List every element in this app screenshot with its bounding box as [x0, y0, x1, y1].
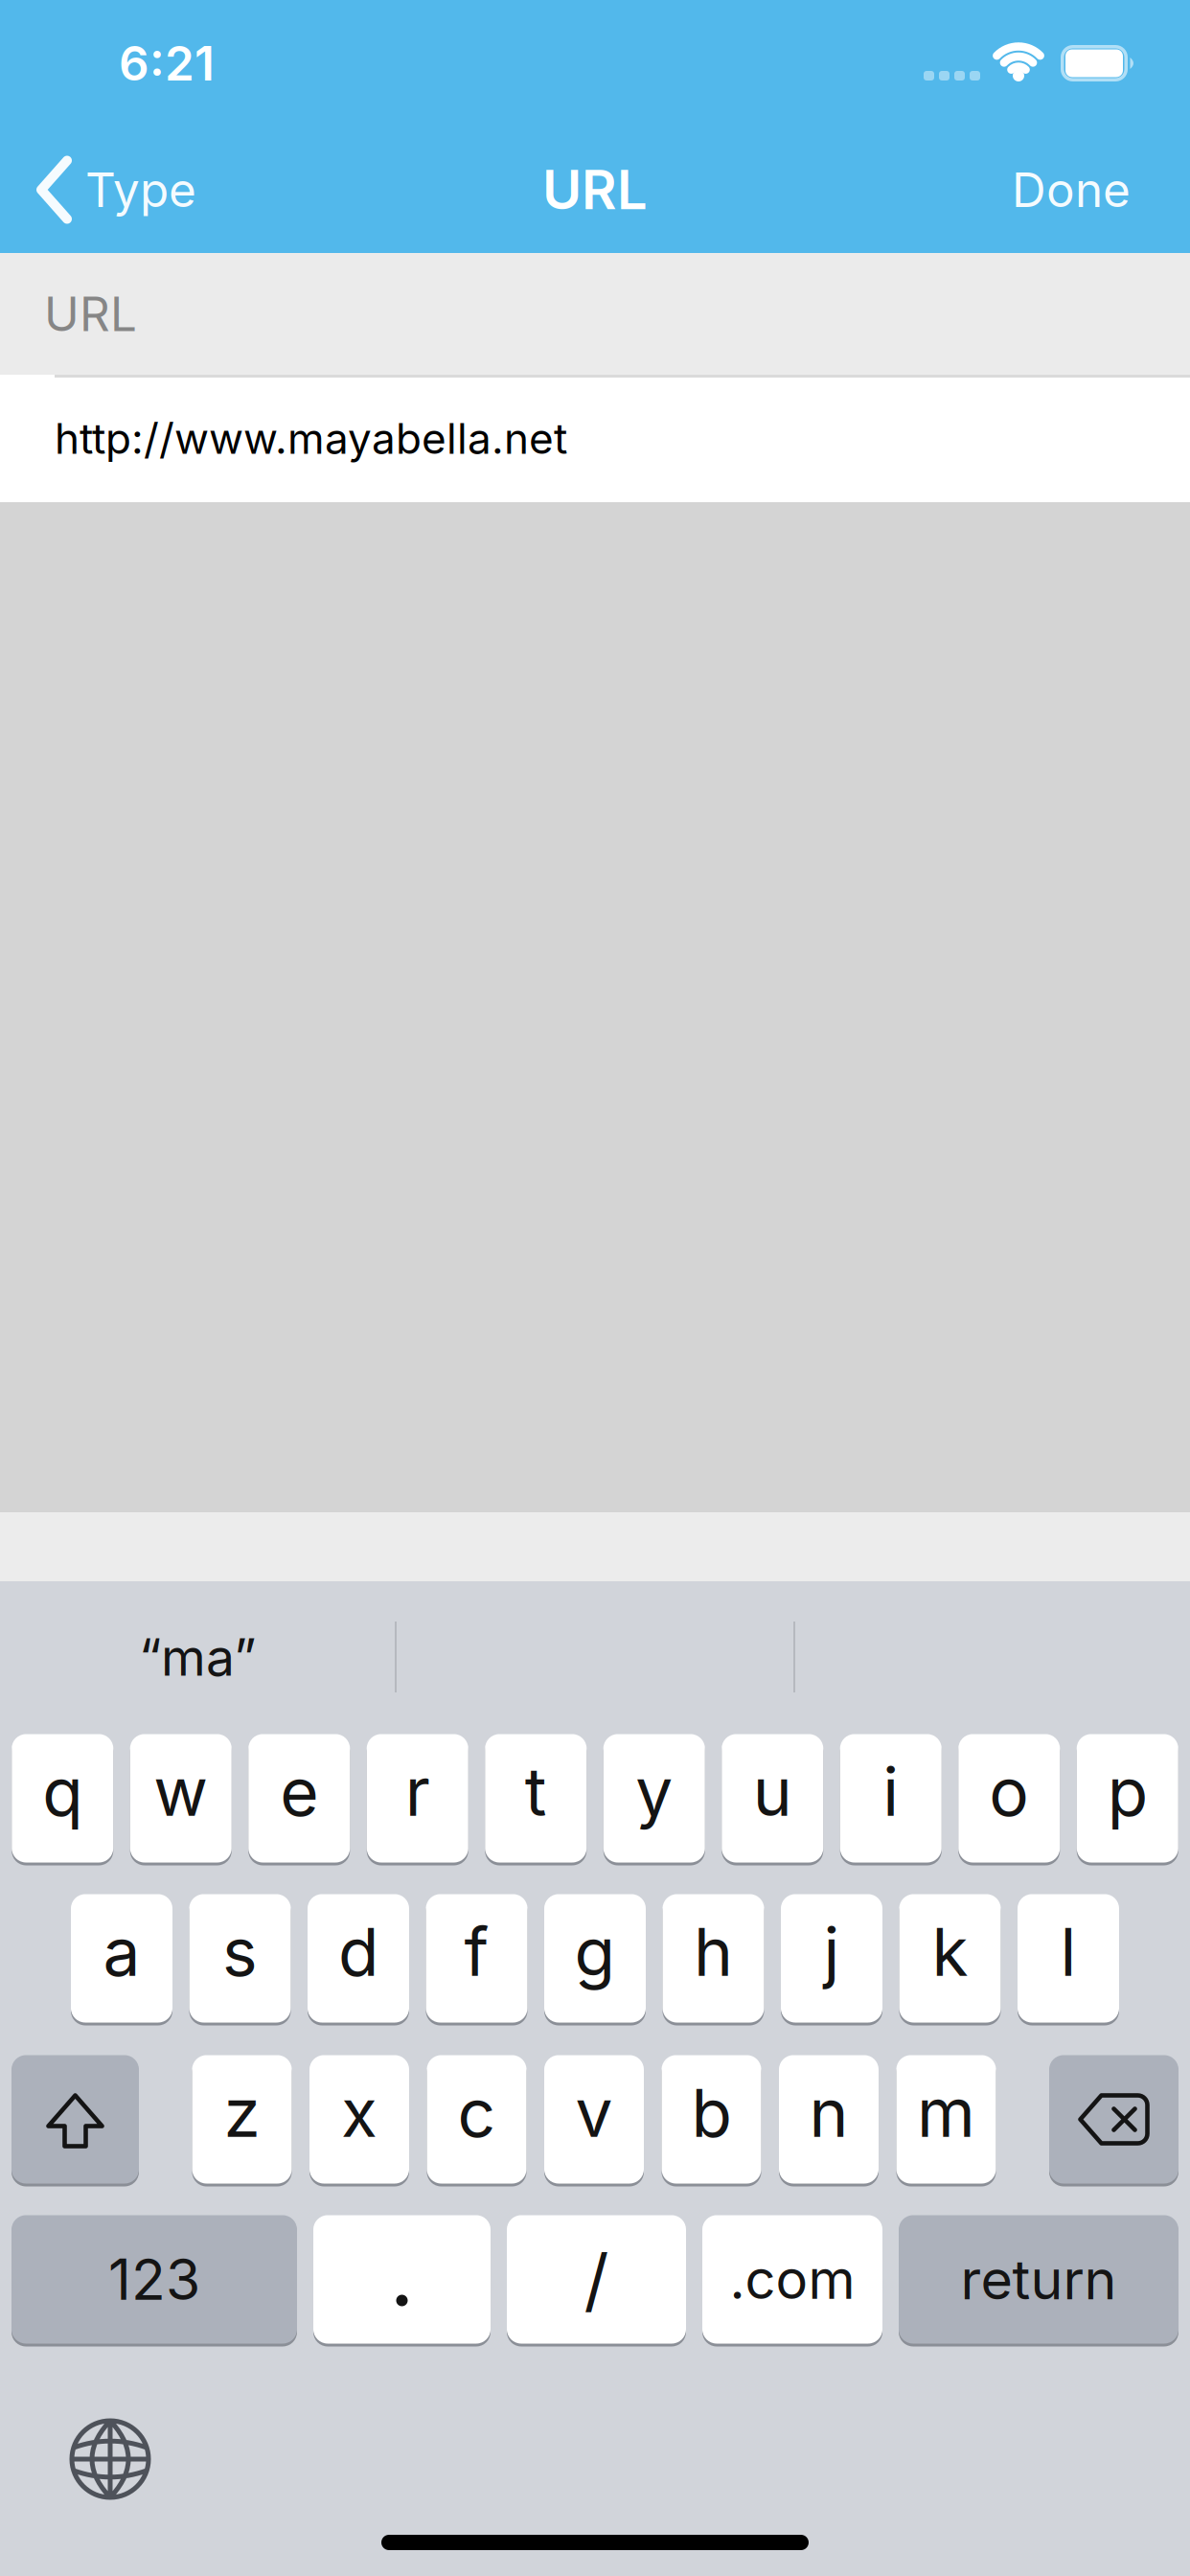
button[interactable]: k: [899, 1893, 1001, 2024]
staticText: return: [961, 2247, 1117, 2312]
button[interactable]: v: [544, 2054, 644, 2185]
staticText: e: [280, 1752, 318, 1831]
staticText: o: [989, 1752, 1029, 1831]
staticText: 6:21: [119, 35, 215, 91]
button[interactable]: m: [896, 2054, 996, 2185]
staticText: y: [635, 1752, 673, 1831]
button[interactable]: d: [308, 1893, 409, 2024]
button[interactable]: return: [899, 2214, 1179, 2345]
button[interactable]: Back: [0, 156, 196, 224]
staticText: URL: [542, 158, 648, 221]
button[interactable]: Delete: [1049, 2054, 1179, 2185]
staticText: g: [574, 1912, 616, 1991]
button[interactable]: i: [840, 1733, 942, 1864]
staticText: x: [341, 2073, 378, 2152]
staticText: s: [222, 1912, 258, 1991]
button[interactable]: Shift: [11, 2054, 139, 2185]
button[interactable]: h: [663, 1893, 764, 2024]
staticText: d: [338, 1912, 378, 1991]
button[interactable]: http://www.mayabella.net: [0, 375, 1190, 502]
button[interactable]: j: [781, 1893, 882, 2024]
button[interactable]: f: [426, 1893, 527, 2024]
staticText: a: [103, 1912, 140, 1991]
button[interactable]: Next keyboard: [67, 2416, 153, 2502]
staticText: b: [691, 2073, 732, 2152]
button[interactable]: e: [248, 1733, 350, 1864]
staticText: q: [42, 1752, 83, 1831]
button[interactable]: z: [192, 2054, 292, 2185]
staticText: j: [824, 1912, 840, 1991]
button[interactable]: /: [507, 2214, 686, 2345]
staticText: v: [575, 2073, 613, 2152]
staticText: r: [405, 1752, 430, 1831]
button[interactable]: y: [603, 1733, 705, 1864]
staticText: l: [1060, 1912, 1076, 1991]
button[interactable]: u: [722, 1733, 823, 1864]
button[interactable]: “ma”: [0, 1581, 395, 1733]
staticText: t: [525, 1752, 547, 1831]
button[interactable]: x: [309, 2054, 409, 2185]
staticText: p: [1107, 1752, 1148, 1831]
staticText: .com: [730, 2248, 855, 2311]
staticText: u: [753, 1752, 792, 1831]
staticText: “ma”: [139, 1627, 256, 1687]
button[interactable]: o: [958, 1733, 1060, 1864]
staticText: /: [584, 2239, 609, 2320]
staticText: http://www.mayabella.net: [55, 414, 567, 463]
staticText: z: [224, 2073, 260, 2152]
staticText: c: [458, 2073, 496, 2152]
button[interactable]: a: [71, 1893, 172, 2024]
button[interactable]: c: [427, 2054, 526, 2185]
button[interactable]: w: [130, 1733, 232, 1864]
staticText: n: [809, 2073, 848, 2152]
staticText: m: [917, 2073, 975, 2152]
staticText: f: [464, 1912, 489, 1991]
button[interactable]: .com: [702, 2214, 882, 2345]
staticText: Type: [85, 162, 196, 218]
staticText: i: [883, 1752, 899, 1831]
button[interactable]: 123: [11, 2214, 297, 2345]
button[interactable]: Period: [313, 2214, 491, 2345]
button[interactable]: r: [367, 1733, 468, 1864]
button[interactable]: t: [485, 1733, 587, 1864]
button[interactable]: n: [779, 2054, 879, 2185]
button[interactable]: Done: [1012, 162, 1190, 218]
button[interactable]: s: [189, 1893, 291, 2024]
staticText: h: [694, 1912, 733, 1991]
button[interactable]: p: [1077, 1733, 1178, 1864]
button[interactable]: l: [1018, 1893, 1119, 2024]
button[interactable]: g: [544, 1893, 646, 2024]
staticText: URL: [44, 286, 137, 342]
staticText: w: [153, 1752, 208, 1831]
staticText: 123: [108, 2246, 200, 2313]
button[interactable]: q: [12, 1733, 113, 1864]
staticText: k: [932, 1912, 968, 1991]
button[interactable]: b: [662, 2054, 761, 2185]
staticText: Done: [1012, 162, 1131, 218]
